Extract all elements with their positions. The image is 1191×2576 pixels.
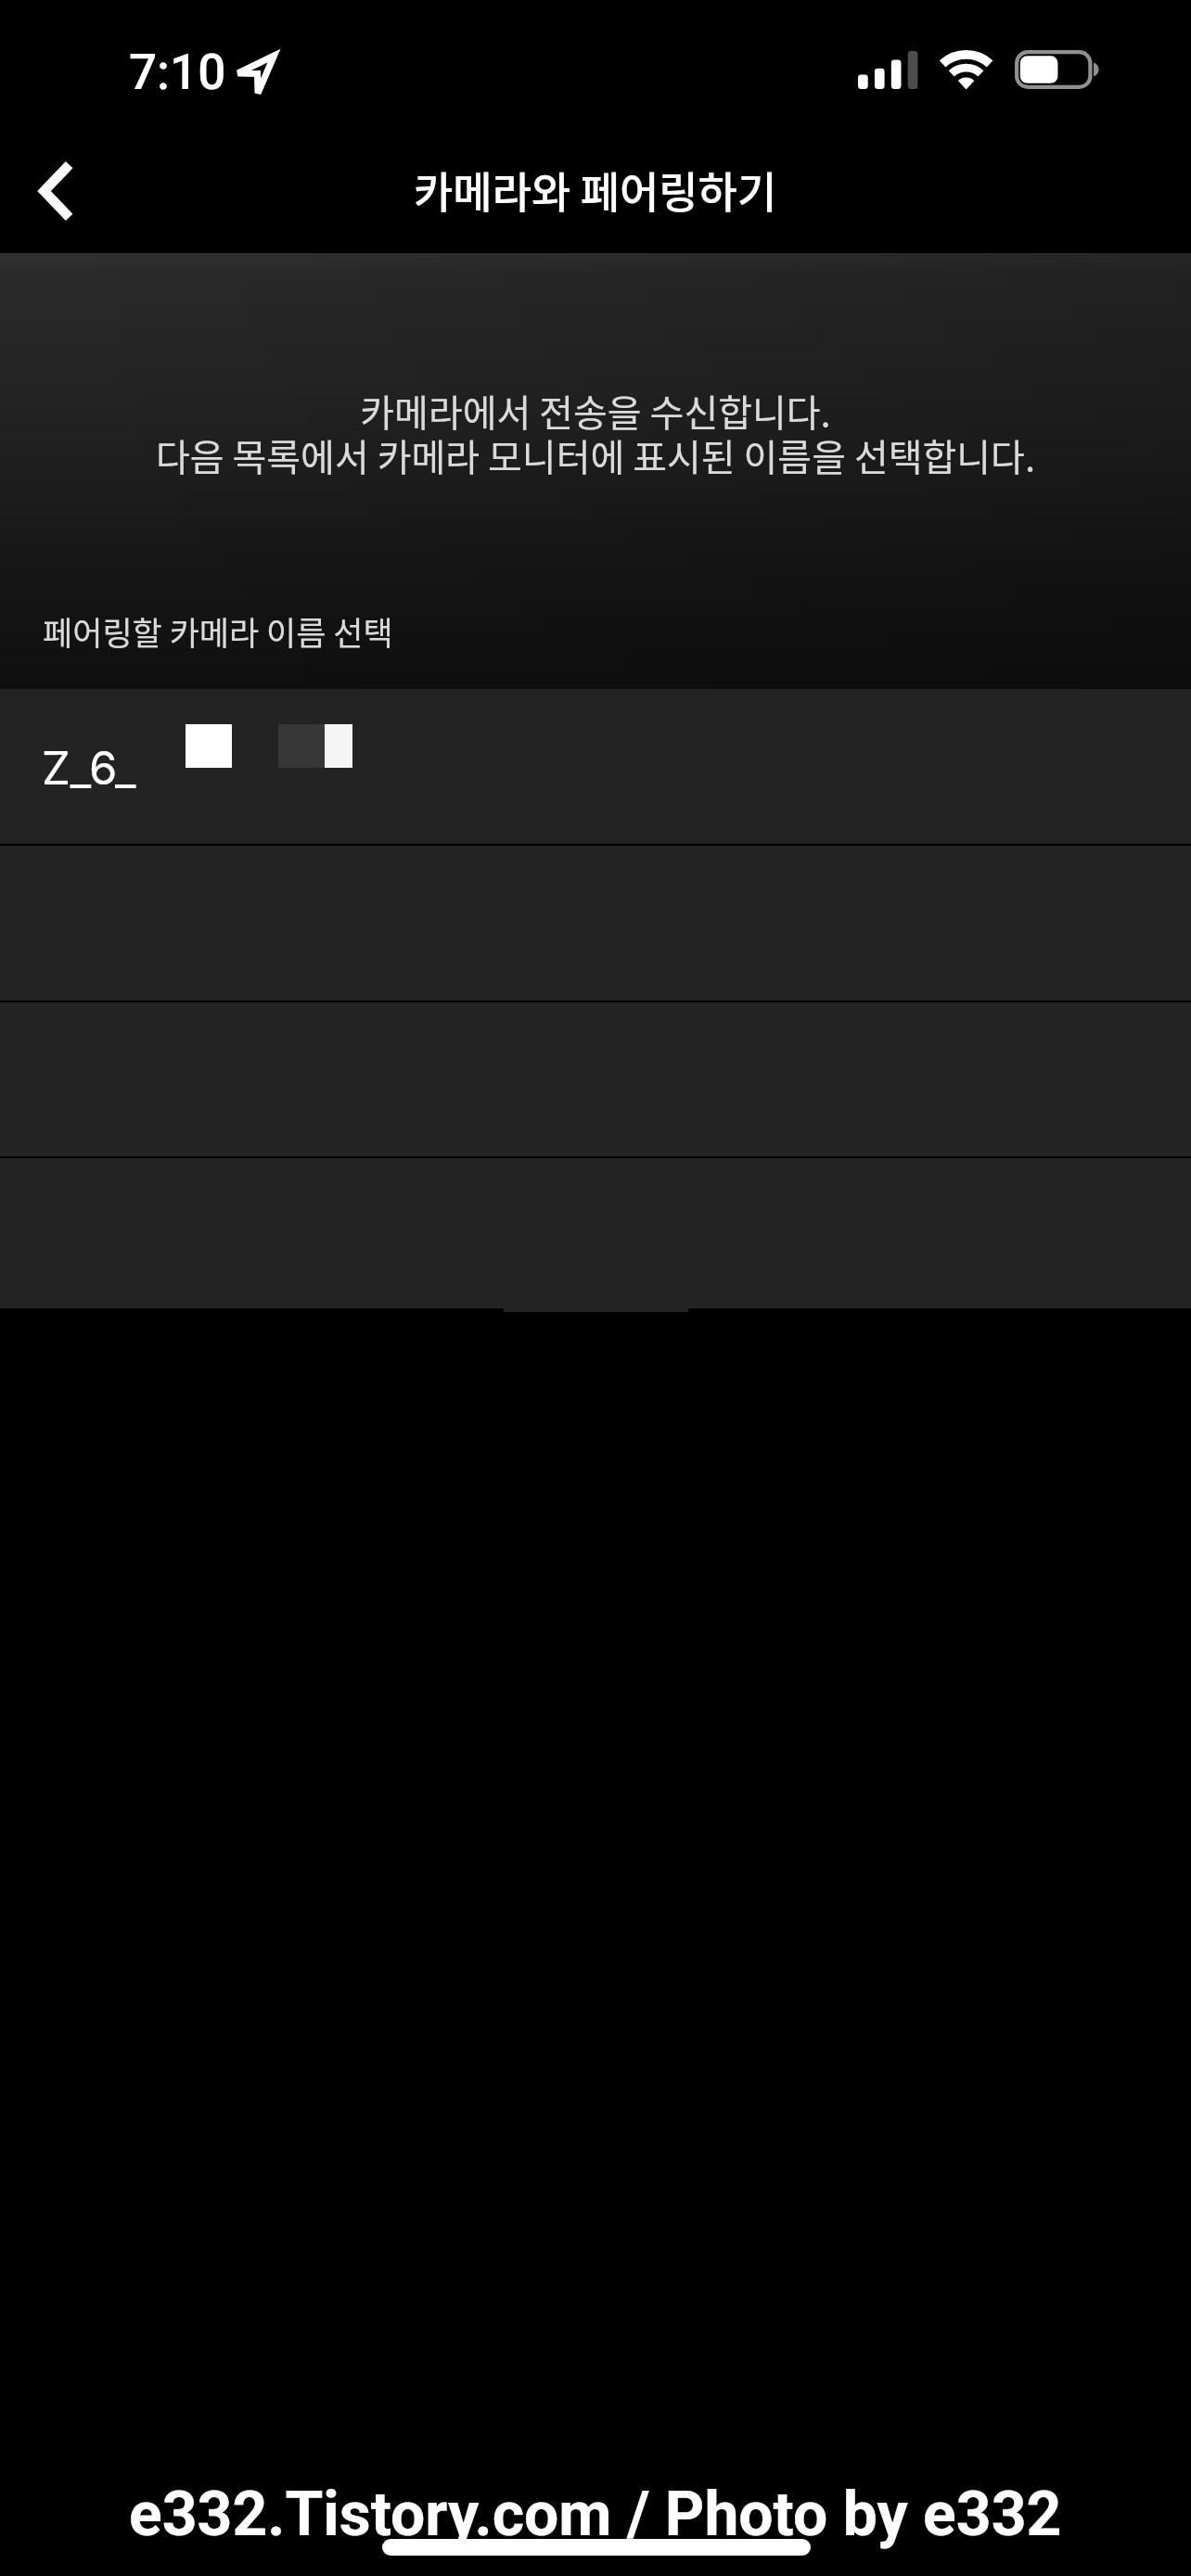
staticText: 페어링할 카메라 이름 선택 [43, 607, 393, 655]
other: Wi-Fi [940, 50, 993, 93]
button[interactable]: Back [4, 143, 106, 239]
other: Location services active [233, 51, 279, 97]
staticText: 7:10 [129, 44, 226, 101]
other: Battery [1015, 50, 1103, 90]
staticText: Z_6_ [42, 741, 136, 796]
staticText: 카메라와 페어링하기 [414, 159, 777, 221]
staticText: 카메라에서 전송을 수신합니다. 다음 목록에서 카메라 모니터에 표시된 이름… [0, 384, 1191, 482]
other: Cellular signal [858, 50, 919, 90]
staticText: e332.Tistory.com / Photo by e332 [129, 2479, 1062, 2550]
button[interactable]: Z_6_ [0, 689, 1191, 844]
